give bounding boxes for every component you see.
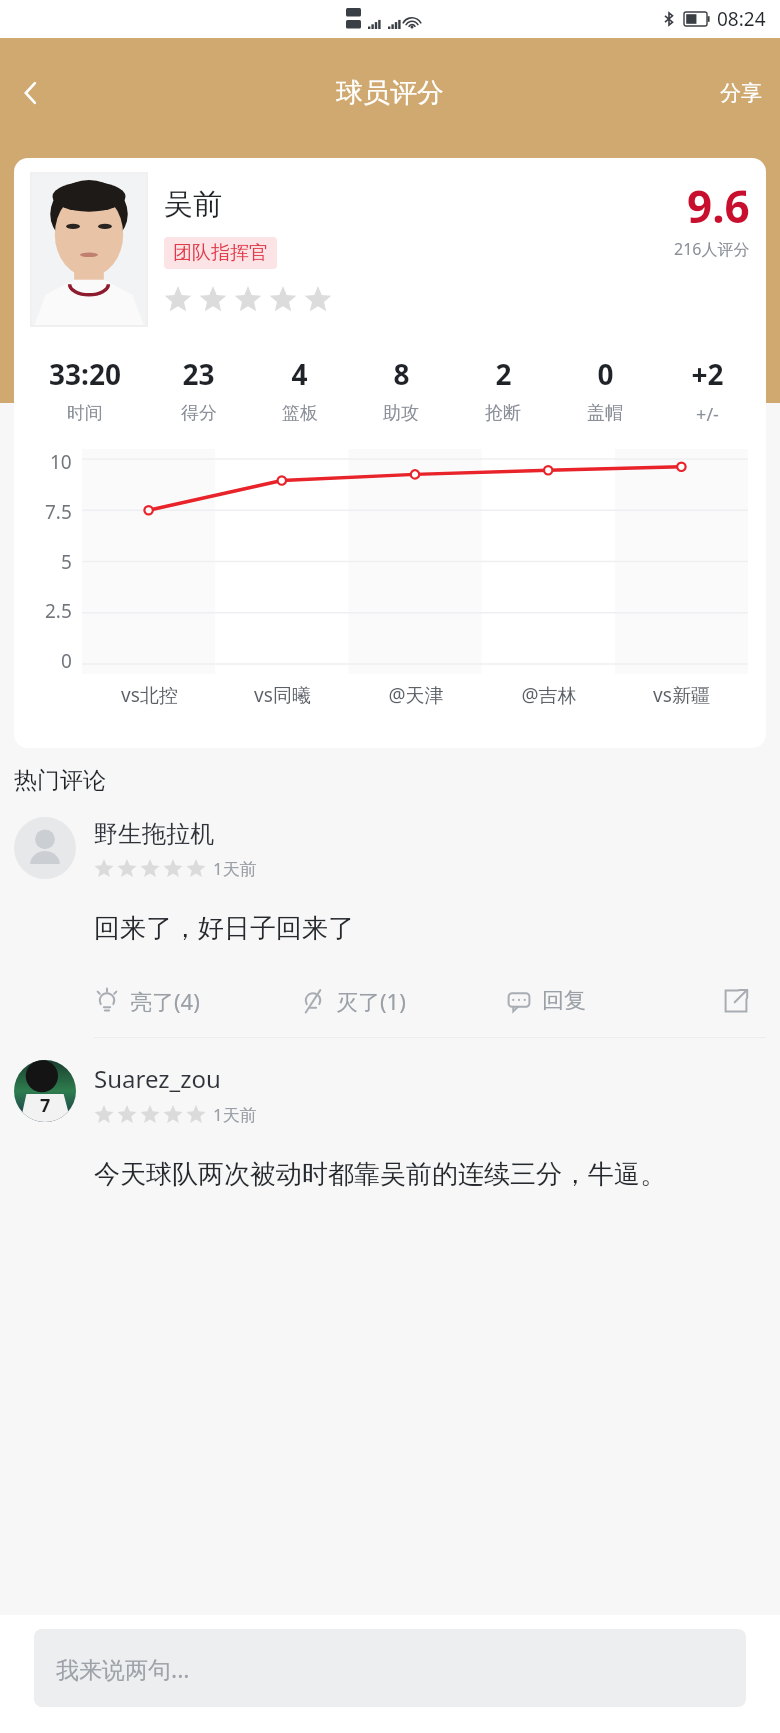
staticText: @吉林: [521, 682, 577, 708]
button[interactable]: 我来说两句...: [34, 1629, 746, 1707]
staticText: 4: [291, 355, 308, 393]
staticText: 0: [61, 648, 72, 674]
staticText: @天津: [388, 682, 444, 708]
staticText: 灭了(1): [336, 986, 406, 1016]
staticText: 2.5: [45, 598, 72, 624]
staticText: 得分: [181, 402, 217, 425]
staticText: 我来说两句...: [56, 1653, 190, 1684]
button[interactable]: 分享: [702, 68, 780, 118]
staticText: Suarez_zou: [94, 1062, 221, 1095]
button[interactable]: 回复: [506, 979, 712, 1023]
button[interactable]: 7: [0, 1038, 780, 1191]
staticText: vs北控: [121, 682, 178, 708]
button[interactable]: Back: [4, 66, 58, 120]
staticText: 8: [393, 355, 410, 393]
button[interactable]: 亮了(4): [94, 978, 300, 1024]
staticText: 23: [182, 355, 215, 393]
button[interactable]: 灭了(1): [300, 978, 506, 1024]
staticText: 7: [40, 1093, 51, 1118]
staticText: 团队指挥官: [173, 241, 268, 265]
staticText: 回来了，好日子回来了: [94, 912, 354, 945]
staticText: 10: [50, 449, 72, 475]
staticText: vs同曦: [254, 682, 311, 708]
staticText: 5: [61, 549, 72, 575]
staticText: +/-: [696, 402, 719, 427]
staticText: 篮板: [282, 402, 318, 425]
staticText: 热门评论: [14, 766, 106, 795]
staticText: 1天前: [213, 1103, 257, 1126]
staticText: 7.5: [45, 499, 72, 525]
staticText: 回复: [542, 987, 586, 1015]
staticText: 亮了(4): [130, 986, 200, 1016]
button[interactable]: 野生拖拉机: [0, 817, 780, 1038]
staticText: 时间: [67, 402, 103, 425]
staticText: 助攻: [383, 402, 419, 425]
staticText: vs新疆: [653, 682, 710, 708]
staticText: 野生拖拉机: [94, 819, 214, 849]
staticText: 吴前: [164, 186, 222, 223]
staticText: 33:20: [49, 355, 121, 393]
staticText: 1天前: [213, 857, 257, 880]
staticText: 2: [495, 355, 512, 393]
staticText: +2: [691, 355, 724, 393]
staticText: 0: [597, 355, 614, 393]
staticText: 9.6: [687, 176, 750, 236]
button[interactable]: 吴前: [14, 158, 766, 748]
staticText: 盖帽: [587, 402, 623, 425]
staticText: 216人评分: [674, 238, 750, 260]
staticText: 08:24: [717, 6, 766, 32]
staticText: 球员评分: [336, 76, 444, 110]
staticText: 分享: [720, 80, 762, 106]
staticText: 抢断: [485, 402, 521, 425]
staticText: 今天球队两次被动时都靠吴前的连续三分，牛逼。: [94, 1158, 666, 1191]
button[interactable]: Share comment: [712, 977, 760, 1025]
